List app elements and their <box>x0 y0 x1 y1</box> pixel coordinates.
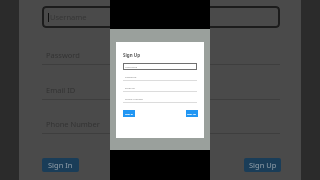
staticText: Sign In <box>125 112 134 115</box>
button[interactable]: Username <box>42 6 280 28</box>
staticText: Username <box>50 12 87 22</box>
button[interactable]: Password <box>125 75 137 78</box>
staticText: Sign Up <box>249 160 277 170</box>
staticText: Sign Up <box>123 52 141 58</box>
staticText: Phone Number <box>46 119 100 129</box>
staticText: Username <box>125 65 138 68</box>
button[interactable]: Sign In <box>42 158 79 172</box>
button[interactable]: Email ID <box>125 86 135 89</box>
staticText: Password <box>46 50 80 60</box>
staticText: Sign In <box>48 160 73 170</box>
button[interactable]: Sign Up <box>186 110 198 117</box>
staticText: Email ID <box>46 85 76 95</box>
staticText: Sign Up <box>187 112 197 115</box>
button[interactable]: Username <box>123 63 197 70</box>
button[interactable]: Phone Number <box>125 97 143 100</box>
button[interactable]: Sign Up <box>244 158 281 172</box>
button[interactable]: Sign In <box>123 110 135 117</box>
